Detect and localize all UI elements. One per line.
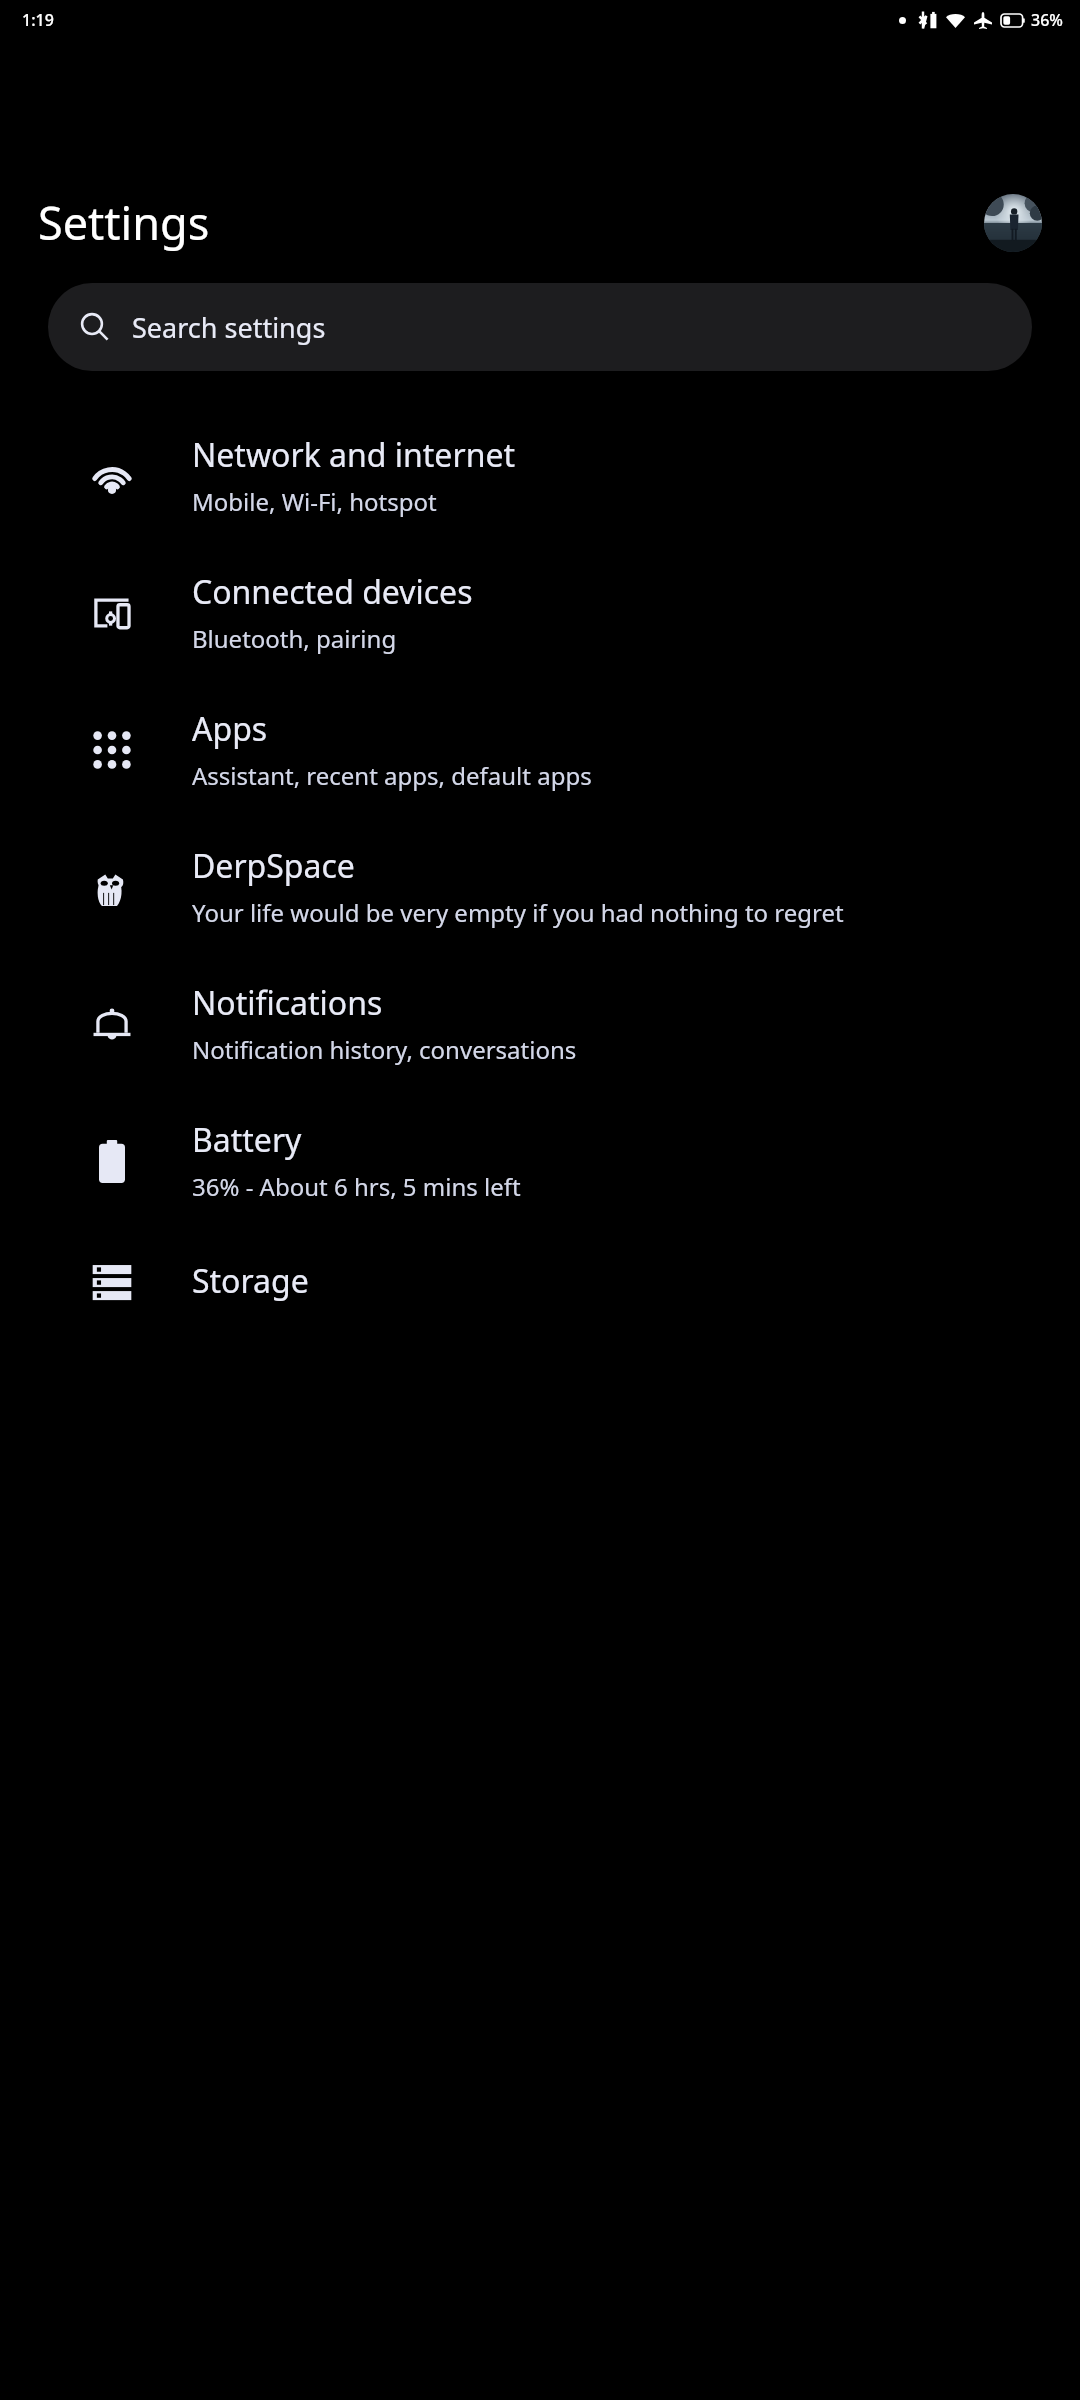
staticText: 36% (1031, 9, 1063, 31)
staticText: 1:19 (22, 9, 54, 31)
staticText: 36% - About 6 hrs, 5 mins left (192, 1170, 521, 1203)
button[interactable]: DerpSpace (0, 818, 1080, 955)
staticText: Network and internet (192, 433, 516, 477)
staticText: Battery (192, 1118, 302, 1162)
staticText: DerpSpace (192, 844, 355, 888)
button[interactable]: Search settings (48, 283, 1032, 371)
button[interactable]: Notifications (0, 955, 1080, 1092)
staticText: Mobile, Wi-Fi, hotspot (192, 485, 437, 518)
button[interactable]: Network and internet (0, 407, 1080, 544)
staticText: Notification history, conversations (192, 1033, 577, 1066)
button[interactable]: Battery (0, 1092, 1080, 1229)
staticText: Connected devices (192, 570, 473, 614)
staticText: Apps (192, 707, 268, 751)
staticText: Notifications (192, 981, 383, 1025)
button[interactable]: Storage (0, 1229, 1080, 1333)
staticText: Bluetooth, pairing (192, 622, 397, 655)
staticText: Storage (192, 1259, 309, 1303)
button[interactable]: Connected devices (0, 544, 1080, 681)
button[interactable]: Account avatar (984, 194, 1042, 252)
button[interactable]: Apps (0, 681, 1080, 818)
staticText: Assistant, recent apps, default apps (192, 759, 592, 792)
staticText: Settings (38, 192, 210, 253)
staticText: Your life would be very empty if you had… (192, 896, 844, 929)
staticText: Search settings (132, 309, 326, 346)
